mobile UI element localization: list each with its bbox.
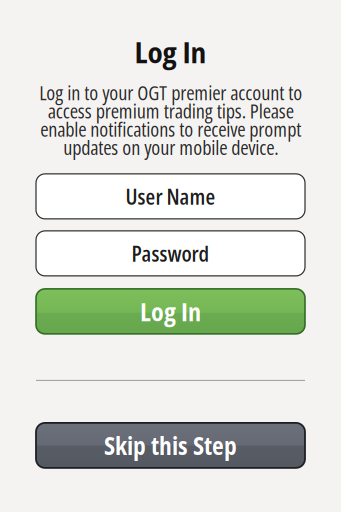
staticText: Log In xyxy=(140,294,201,329)
button[interactable]: Skip this Step xyxy=(36,423,305,468)
staticText: Log In xyxy=(134,32,206,72)
button[interactable]: Log In xyxy=(36,289,305,334)
staticText: User Name xyxy=(125,182,215,211)
staticText: Log in to your OGT premier account to ac… xyxy=(39,79,302,161)
button[interactable]: Password xyxy=(36,231,305,276)
staticText: Password xyxy=(131,239,209,268)
staticText: Skip this Step xyxy=(104,429,237,462)
button[interactable]: User Name xyxy=(36,174,305,219)
